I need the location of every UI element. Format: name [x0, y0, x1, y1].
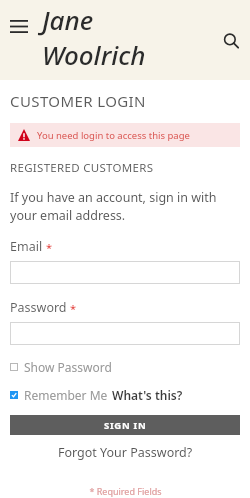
button[interactable]: Jane Woolrich: [42, 2, 192, 76]
button[interactable]: What's this?: [112, 387, 183, 403]
button[interactable]: Remember Me: [10, 387, 108, 403]
button[interactable]: SIGN IN: [10, 415, 240, 435]
staticText: *: [46, 240, 53, 255]
staticText: You need login to access this page: [37, 129, 190, 142]
staticText: Remember Me: [24, 387, 108, 403]
staticText: If you have an account, sign in with you…: [10, 189, 240, 224]
button[interactable]: Search: [217, 27, 245, 55]
staticText: REGISTERED CUSTOMERS: [10, 160, 154, 176]
staticText: What's this?: [112, 387, 183, 403]
staticText: Password: [10, 299, 67, 316]
staticText: Email: [10, 238, 43, 255]
button[interactable]: [10, 261, 240, 284]
button[interactable]: [10, 322, 240, 345]
button[interactable]: Forgot Your Password?: [58, 444, 193, 461]
staticText: Forgot Your Password?: [58, 444, 193, 461]
staticText: *: [70, 301, 77, 316]
staticText: SIGN IN: [104, 419, 147, 432]
staticText: * Required Fields: [89, 485, 162, 497]
staticText: Show Password: [24, 359, 112, 375]
staticText: Jane Woolrich: [42, 2, 192, 72]
button[interactable]: Menu: [5, 12, 33, 40]
staticText: CUSTOMER LOGIN: [10, 91, 146, 111]
button[interactable]: Show Password: [10, 359, 112, 375]
